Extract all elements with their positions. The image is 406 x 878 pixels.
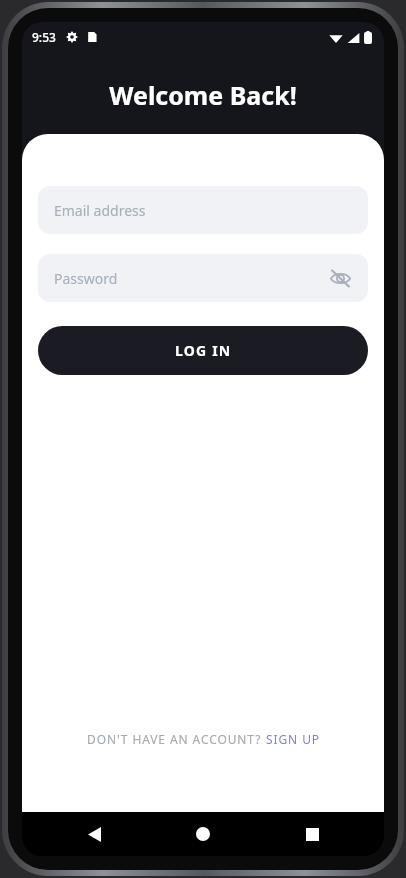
- staticText: DON'T HAVE AN ACCOUNT?: [87, 731, 266, 747]
- button[interactable]: Back: [74, 814, 114, 854]
- staticText: SIGN UP: [266, 731, 320, 747]
- button[interactable]: Home: [183, 814, 223, 854]
- button[interactable]: Recent apps: [292, 814, 332, 854]
- staticText: Welcome Back!: [22, 78, 384, 112]
- button[interactable]: Email address: [38, 186, 368, 234]
- staticText: Email address: [54, 201, 146, 220]
- button[interactable]: LOG IN: [38, 326, 368, 375]
- staticText: 9:53: [32, 29, 56, 45]
- staticText: LOG IN: [175, 341, 232, 360]
- staticText: Password: [54, 269, 118, 288]
- button[interactable]: Password: [38, 254, 368, 302]
- button[interactable]: SIGN UP: [266, 731, 320, 747]
- button[interactable]: Show password: [324, 262, 356, 294]
